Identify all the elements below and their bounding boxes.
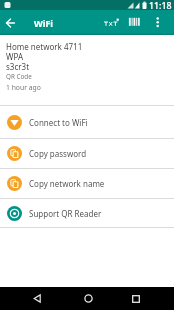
staticText: 11:18 xyxy=(149,0,172,10)
button[interactable] xyxy=(0,13,20,33)
button[interactable]: Copy network name xyxy=(0,169,174,198)
staticText: Home network 4711 xyxy=(6,41,83,51)
staticText: Connect to WiFi xyxy=(29,117,88,128)
staticText: Copy password xyxy=(29,148,87,159)
button[interactable] xyxy=(126,287,146,310)
button[interactable]: Copy password xyxy=(0,139,174,168)
staticText: s3cr3t xyxy=(6,61,30,71)
staticText: Support QR Reader xyxy=(29,208,102,219)
staticText: Copy network name xyxy=(29,178,105,189)
button[interactable] xyxy=(27,287,47,310)
button[interactable] xyxy=(78,287,98,310)
button[interactable] xyxy=(100,13,121,32)
staticText: QR Code xyxy=(6,72,32,80)
staticText: WiFi xyxy=(34,17,54,29)
button[interactable]: Support QR Reader xyxy=(0,199,174,227)
staticText: WPA xyxy=(6,51,23,61)
button[interactable]: Connect to WiFi xyxy=(0,106,174,138)
button[interactable] xyxy=(148,13,167,32)
button[interactable] xyxy=(124,13,143,32)
staticText: 1 hour ago xyxy=(6,83,41,92)
